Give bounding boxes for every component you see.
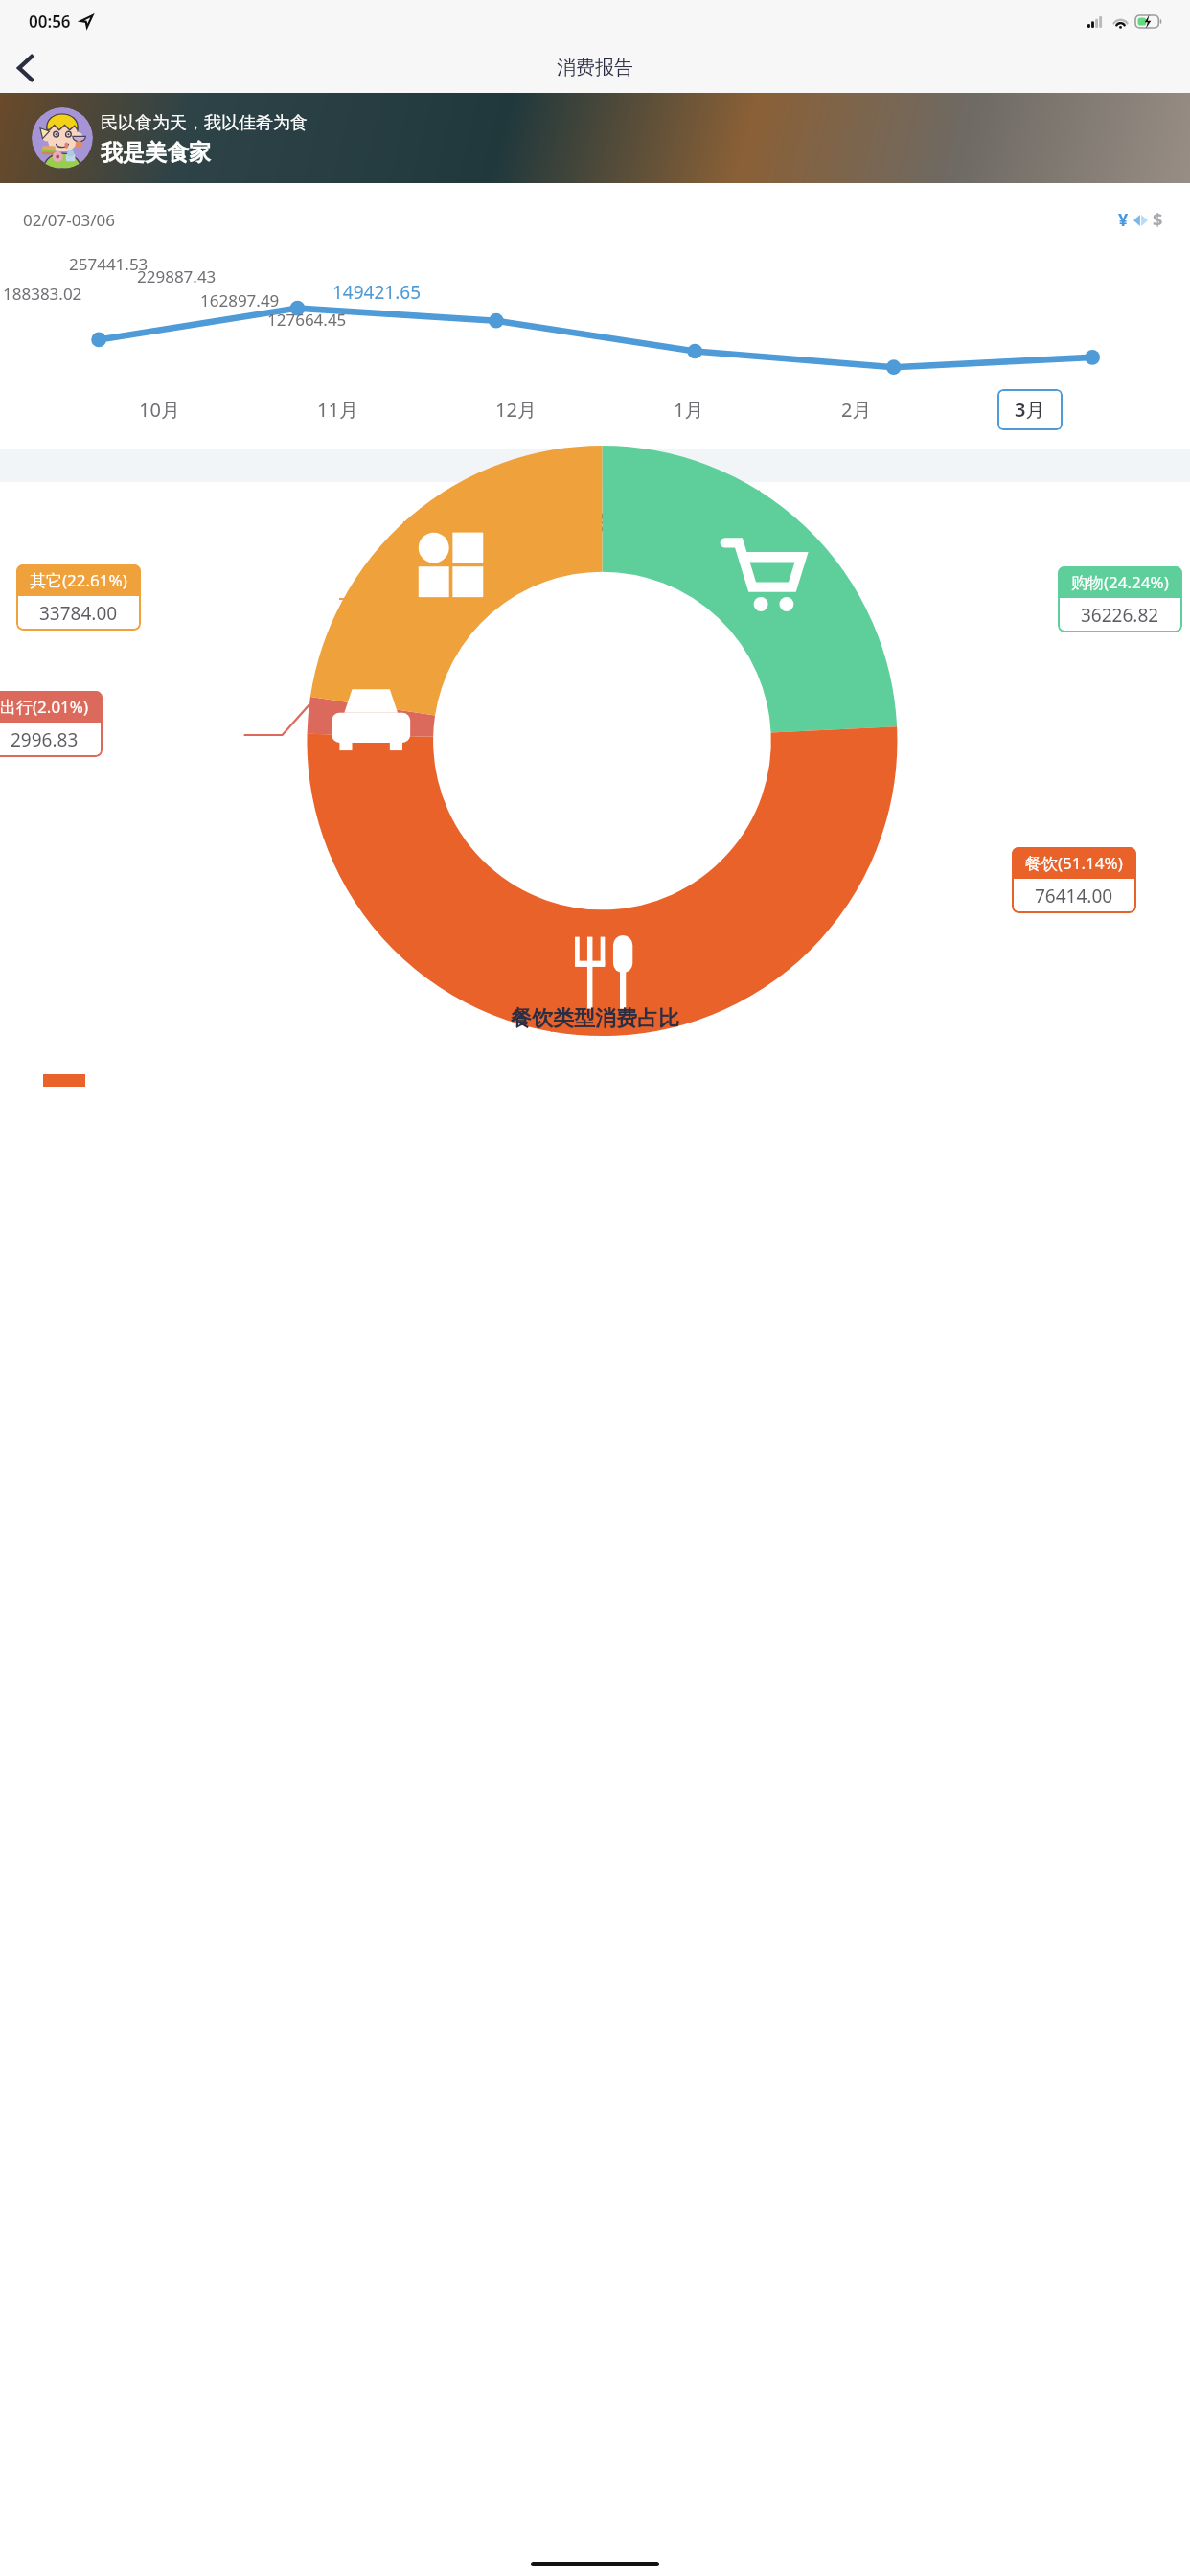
button[interactable]: 出行(2.01%) — [0, 691, 103, 757]
button[interactable]: 10月 — [127, 389, 192, 430]
staticText: 188383.02 — [3, 283, 82, 305]
staticText: 1月 — [674, 397, 704, 423]
staticText: 10月 — [139, 397, 180, 423]
button[interactable]: 2月 — [830, 389, 883, 430]
staticText: $ — [1153, 208, 1163, 232]
button[interactable]: 11月 — [306, 389, 370, 430]
staticText: 3月 — [1015, 397, 1045, 423]
staticText: 00:56 — [29, 11, 71, 33]
staticText: 33784.00 — [39, 601, 118, 626]
button[interactable]: 民以食为天，我以佳肴为食 — [0, 93, 1190, 183]
staticText: 11月 — [317, 397, 358, 423]
button[interactable]: 1月 — [662, 389, 716, 430]
staticText: 162897.49 — [200, 289, 280, 311]
staticText: 我是美食家 — [101, 139, 211, 167]
staticText: 购物(24.24%) — [1071, 571, 1169, 593]
staticText: 餐饮类型消费占比 — [511, 1005, 679, 1032]
staticText: 257441.53 — [69, 253, 149, 275]
staticText: 76414.00 — [1035, 884, 1113, 908]
staticText: 36226.82 — [1081, 603, 1159, 628]
staticText: 12月 — [495, 397, 537, 423]
staticText: ¥ — [1118, 208, 1129, 232]
staticText: 229887.43 — [137, 265, 217, 287]
button[interactable]: 购物(24.24%) — [1058, 566, 1182, 632]
button[interactable]: Back — [0, 43, 50, 93]
button[interactable]: 餐饮(51.14%) — [1012, 847, 1136, 913]
staticText: 02/07-03/06 — [23, 209, 115, 231]
staticText: 餐饮(51.14%) — [1025, 852, 1123, 874]
staticText: 其它(22.61%) — [30, 569, 127, 591]
staticText: 出行(2.01%) — [0, 696, 89, 718]
staticText: 127664.45 — [267, 309, 347, 331]
staticText: 消费分析 — [553, 511, 637, 538]
staticText: 2月 — [841, 397, 872, 423]
staticText: 2996.83 — [11, 727, 79, 752]
staticText: 消费报告 — [557, 56, 633, 80]
staticText: 149421.65 — [332, 280, 422, 305]
button[interactable]: 其它(22.61%) — [16, 564, 141, 631]
staticText: 民以食为天，我以佳肴为食 — [101, 112, 308, 134]
button[interactable]: 3月 — [997, 389, 1063, 430]
button[interactable]: 12月 — [484, 389, 548, 430]
button[interactable]: Switch currency — [1114, 204, 1167, 236]
